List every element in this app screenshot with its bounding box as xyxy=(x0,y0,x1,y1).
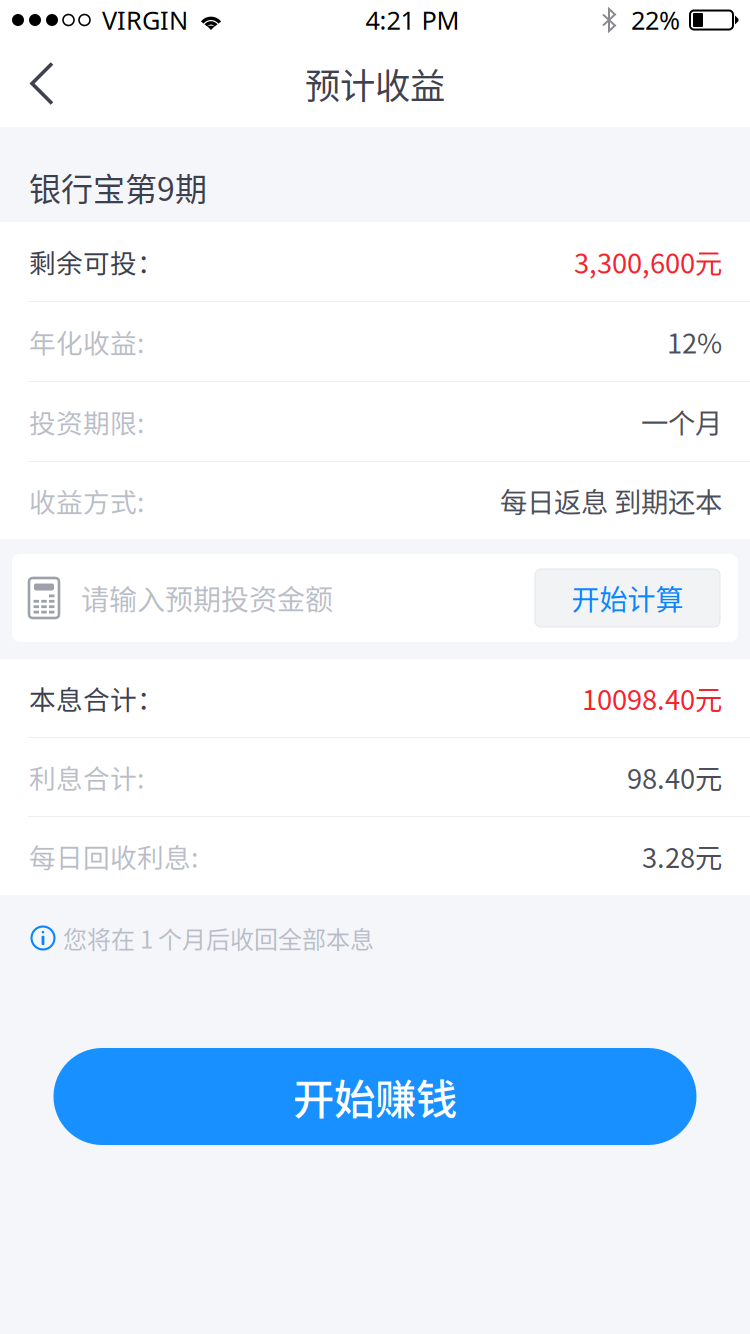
staticText: 预计收益 xyxy=(305,58,445,109)
staticText: 投资期限: xyxy=(29,402,144,441)
staticText: VIRGIN xyxy=(102,3,188,37)
staticText: 银行宝第9期 xyxy=(29,164,207,210)
staticText: 您将在 1 个月后收回全部本息 xyxy=(63,921,374,955)
staticText: 收益方式: xyxy=(29,481,144,520)
staticText: 本息合计： xyxy=(29,679,164,717)
staticText: 一个月 xyxy=(641,402,722,441)
staticText: 4:21 PM xyxy=(365,3,459,37)
staticText: 3.28元 xyxy=(642,836,722,876)
button[interactable]: Back xyxy=(0,47,76,119)
staticText: 请输入预期投资金额 xyxy=(81,578,333,618)
staticText: 开始计算 xyxy=(571,578,683,618)
staticText: 10098.40元 xyxy=(582,678,722,718)
staticText: 开始赚钱 xyxy=(293,1067,457,1126)
staticText: 3,300,600元 xyxy=(574,242,722,281)
staticText: 98.40元 xyxy=(627,757,722,797)
staticText: 利息合计: xyxy=(29,758,144,796)
staticText: 每日返息 到期还本 xyxy=(500,481,722,520)
button[interactable]: 开始计算 xyxy=(535,569,720,627)
staticText: 12% xyxy=(667,322,722,361)
staticText: 22% xyxy=(631,3,680,37)
button[interactable]: 开始赚钱 xyxy=(53,1048,696,1145)
staticText: 每日回收利息: xyxy=(29,837,198,875)
staticText: 年化收益: xyxy=(29,322,144,361)
staticText: 剩余可投： xyxy=(29,242,164,281)
